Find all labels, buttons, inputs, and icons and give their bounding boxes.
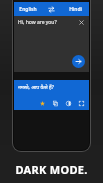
button[interactable]: Hindi <box>61 2 89 16</box>
button[interactable]: Swap languages <box>41 2 61 16</box>
staticText: English <box>19 6 37 13</box>
button[interactable]: Fullscreen <box>77 99 86 108</box>
staticText: Hindi <box>69 6 82 13</box>
button[interactable]: नमस्ते, आप कैसे हैं? <box>14 80 89 110</box>
staticText: DARK MODE. <box>15 162 88 177</box>
button[interactable]: Translate <box>72 55 85 68</box>
button[interactable]: Favorite <box>38 99 47 108</box>
button[interactable]: English <box>14 2 41 16</box>
staticText: Hi, how are you? <box>18 19 57 26</box>
button[interactable]: Clear text <box>76 17 87 28</box>
button[interactable]: Copy <box>51 99 60 108</box>
button[interactable]: Listen <box>64 99 73 108</box>
staticText: नमस्ते, आप कैसे हैं? <box>18 84 54 91</box>
